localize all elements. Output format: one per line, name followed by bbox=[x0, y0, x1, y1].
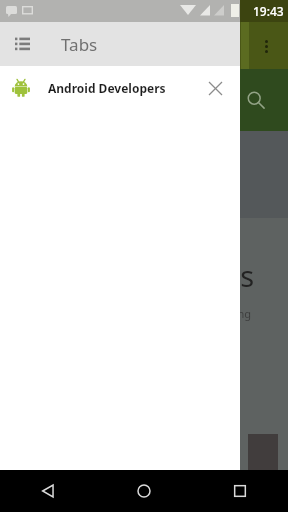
button[interactable]: Home bbox=[96, 470, 192, 512]
button[interactable]: New tab bbox=[180, 472, 240, 512]
button[interactable]: Close tab bbox=[201, 74, 229, 102]
staticText: Android Developers bbox=[48, 80, 201, 96]
staticText: designing bbox=[200, 306, 252, 321]
button[interactable]: Search bbox=[242, 86, 270, 114]
button[interactable]: Android Developers bbox=[0, 66, 240, 110]
button[interactable]: Forward bbox=[120, 472, 180, 512]
button[interactable]: Recents bbox=[192, 470, 288, 512]
button[interactable]: Back bbox=[0, 470, 96, 512]
button[interactable]: Tab list bbox=[8, 30, 36, 58]
staticText: Tabs bbox=[61, 33, 98, 56]
staticText: Apps bbox=[186, 256, 255, 295]
staticText: 19:43 bbox=[253, 3, 284, 19]
button[interactable]: More options bbox=[253, 33, 279, 59]
button[interactable]: Back bbox=[0, 472, 60, 512]
